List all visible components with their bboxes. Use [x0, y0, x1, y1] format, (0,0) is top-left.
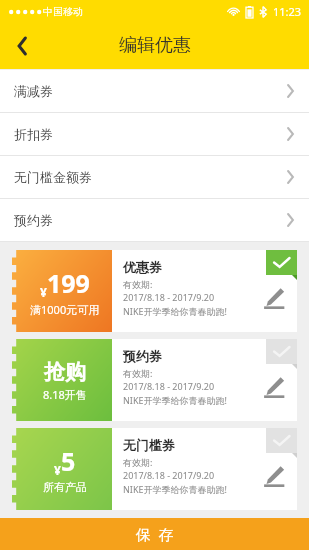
staticText: NIKE开学季给你青春助跑!: [123, 305, 227, 317]
staticText: 2017/8.18 - 2017/9.20: [123, 469, 215, 481]
staticText: NIKE开学季给你青春助跑!: [123, 394, 227, 406]
staticText: 无门槛券: [123, 437, 175, 453]
staticText: 预约券: [14, 212, 53, 228]
staticText: 满减券: [14, 83, 53, 99]
staticText: ¥: [40, 284, 47, 300]
button[interactable]: ¥: [12, 250, 297, 332]
staticText: 有效期:: [123, 456, 153, 468]
staticText: 5: [61, 444, 76, 478]
button[interactable]: Edit: [259, 461, 289, 491]
button[interactable]: 折扣券: [0, 113, 309, 155]
button[interactable]: 满减券: [0, 70, 309, 112]
staticText: 2017/8.18 - 2017/9.20: [123, 291, 215, 303]
button[interactable]: 抢购: [12, 339, 297, 421]
button[interactable]: ¥: [12, 428, 297, 510]
staticText: 抢购: [44, 359, 86, 385]
staticText: 优惠券: [123, 259, 162, 275]
staticText: 有效期:: [123, 278, 153, 290]
staticText: 8.18开售: [43, 387, 87, 402]
staticText: 折扣券: [14, 126, 53, 142]
staticText: 有效期:: [123, 367, 153, 379]
staticText: 199: [47, 266, 90, 300]
staticText: 编辑优惠: [119, 34, 191, 57]
staticText: 满1000元可用: [30, 302, 100, 317]
button[interactable]: Back: [0, 22, 44, 69]
staticText: ¥: [54, 462, 61, 478]
button[interactable]: 预约券: [0, 199, 309, 241]
staticText: 11:23: [273, 4, 302, 19]
button[interactable]: 保 存: [0, 518, 309, 550]
staticText: 2017/8.18 - 2017/9.20: [123, 380, 215, 392]
staticText: 预约券: [123, 348, 162, 364]
staticText: NIKE开学季给你青春助跑!: [123, 483, 227, 495]
staticText: 保 存: [136, 524, 174, 544]
button[interactable]: Edit: [259, 283, 289, 313]
staticText: 无门槛金额券: [14, 169, 92, 185]
staticText: 中国移动: [43, 5, 83, 18]
button[interactable]: 无门槛金额券: [0, 156, 309, 198]
button[interactable]: Edit: [259, 372, 289, 402]
staticText: 所有产品: [43, 480, 87, 494]
